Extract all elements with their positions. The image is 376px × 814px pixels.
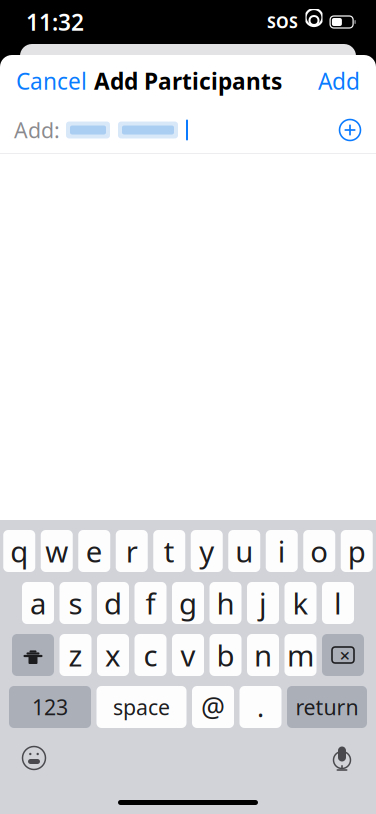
- staticText: g: [179, 583, 197, 622]
- button[interactable]: n: [247, 634, 279, 676]
- button[interactable]: h: [209, 582, 241, 624]
- button[interactable]: Cancel: [0, 59, 103, 103]
- button[interactable]: return: [287, 686, 367, 728]
- staticText: ×: [339, 643, 350, 667]
- staticText: d: [104, 583, 122, 622]
- button[interactable]: s: [59, 582, 91, 624]
- button[interactable]: k: [284, 582, 316, 624]
- staticText: x: [105, 635, 121, 674]
- button[interactable]: z: [59, 634, 91, 676]
- staticText: Cancel: [16, 66, 87, 96]
- staticText: u: [235, 531, 253, 570]
- button[interactable]: t: [153, 530, 185, 572]
- button[interactable]: g: [172, 582, 204, 624]
- staticText: SOS: [267, 11, 298, 33]
- button[interactable]: @: [192, 686, 234, 728]
- button[interactable]: Add: [302, 59, 376, 103]
- staticText: p: [348, 531, 366, 570]
- staticText: o: [310, 531, 328, 570]
- staticText: w: [45, 531, 68, 570]
- staticText: f: [145, 583, 155, 622]
- staticText: r: [126, 531, 138, 570]
- button[interactable]: u: [228, 530, 260, 572]
- staticText: z: [68, 635, 82, 674]
- button[interactable]: v: [172, 634, 204, 676]
- button[interactable]: m: [284, 634, 316, 676]
- staticText: k: [292, 583, 308, 622]
- staticText: @: [201, 689, 225, 725]
- staticText: n: [254, 635, 272, 674]
- staticText: b: [216, 635, 234, 674]
- button[interactable]: q: [3, 530, 35, 572]
- button[interactable]: y: [191, 530, 223, 572]
- button[interactable]: x: [97, 634, 129, 676]
- button[interactable]: Emoji: [14, 740, 54, 776]
- staticText: Add:: [14, 116, 60, 144]
- staticText: c: [143, 635, 157, 674]
- button[interactable]: p: [341, 530, 373, 572]
- staticText: 11:32: [26, 7, 84, 37]
- button[interactable]: j: [247, 582, 279, 624]
- button[interactable]: i: [266, 530, 298, 572]
- staticText: s: [68, 583, 82, 622]
- button[interactable]: 123: [9, 686, 91, 728]
- staticText: m: [287, 635, 314, 674]
- button[interactable]: l: [322, 582, 354, 624]
- button[interactable]: b: [209, 634, 241, 676]
- staticText: e: [86, 531, 103, 570]
- button[interactable]: c: [134, 634, 166, 676]
- button[interactable]: Dictate: [322, 740, 362, 776]
- button[interactable]: a: [22, 582, 54, 624]
- button[interactable]: d: [97, 582, 129, 624]
- button[interactable]: o: [303, 530, 335, 572]
- staticText: .: [257, 689, 264, 725]
- staticText: 123: [32, 693, 68, 721]
- staticText: q: [10, 531, 28, 570]
- button[interactable]: space: [96, 686, 186, 728]
- staticText: a: [30, 583, 46, 622]
- staticText: Add: [318, 66, 360, 96]
- staticText: return: [295, 693, 358, 721]
- staticText: h: [216, 583, 234, 622]
- staticText: i: [278, 531, 286, 570]
- button[interactable]: r: [116, 530, 148, 572]
- staticText: j: [259, 583, 267, 622]
- staticText: Add Participants: [94, 66, 282, 96]
- button[interactable]: e: [78, 530, 110, 572]
- staticText: y: [199, 531, 214, 570]
- staticText: t: [164, 531, 175, 570]
- button[interactable]: w: [41, 530, 73, 572]
- button[interactable]: Shift: [12, 634, 54, 676]
- button[interactable]: Add contact: [338, 118, 362, 142]
- button[interactable]: .: [239, 686, 281, 728]
- button[interactable]: f: [134, 582, 166, 624]
- staticText: space: [113, 693, 170, 721]
- staticText: l: [334, 583, 342, 622]
- staticText: v: [180, 635, 195, 674]
- button[interactable]: Delete: [322, 634, 364, 676]
